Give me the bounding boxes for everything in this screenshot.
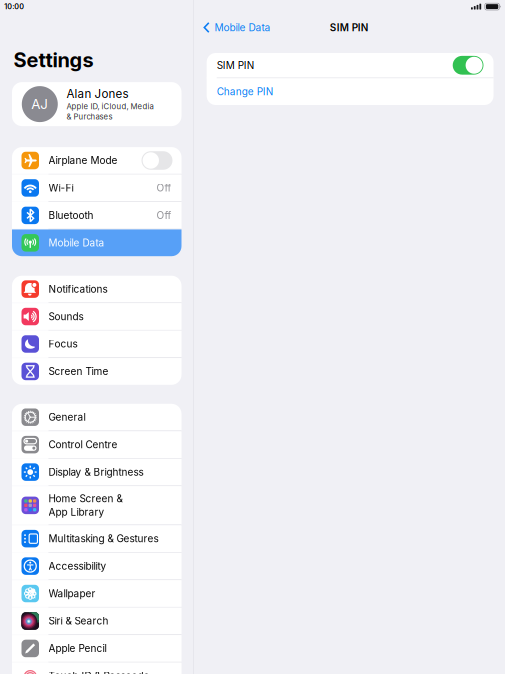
staticText: SIM PIN — [217, 59, 255, 71]
staticText: Siri & Search — [48, 615, 108, 627]
staticText: Alan Jones — [66, 87, 128, 101]
button[interactable]: Apple Pencil — [12, 635, 181, 662]
staticText: Off — [156, 182, 171, 194]
staticText: 10:00 — [4, 2, 24, 11]
button[interactable]: AJ — [12, 82, 181, 126]
button[interactable]: Accessibility — [12, 553, 181, 579]
staticText: Wallpaper — [48, 587, 95, 600]
button[interactable]: Siri & Search — [12, 608, 181, 634]
button[interactable]: Airplane Mode — [12, 147, 181, 174]
staticText: Wi-Fi — [48, 182, 73, 194]
staticText: Off — [156, 209, 171, 221]
button[interactable]: Bluetooth — [12, 202, 181, 229]
staticText: Airplane Mode — [48, 154, 117, 166]
staticText: Focus — [48, 338, 77, 350]
button[interactable]: Wallpaper — [12, 580, 181, 607]
staticText: Settings — [13, 48, 93, 72]
button[interactable]: Focus — [12, 331, 181, 357]
staticText: Screen Time — [48, 365, 108, 377]
button[interactable]: Change PIN — [207, 78, 493, 105]
button[interactable]: Touch ID & Passcode — [12, 662, 181, 674]
button[interactable]: Control Centre — [12, 431, 181, 458]
button[interactable]: Screen Time — [12, 358, 181, 385]
staticText: Mobile Data — [48, 237, 104, 249]
staticText: Mobile Data — [214, 21, 270, 34]
button[interactable]: Display & Brightness — [12, 459, 181, 485]
button[interactable]: Sounds — [12, 303, 181, 330]
staticText: AJ — [31, 96, 48, 112]
staticText: Control Centre — [48, 439, 117, 451]
staticText: Touch ID & Passcode — [48, 670, 149, 674]
button[interactable]: Multitasking & Gestures — [12, 525, 181, 552]
staticText: Display & Brightness — [48, 466, 143, 478]
staticText: Accessibility — [48, 560, 106, 572]
button[interactable]: General — [12, 404, 181, 431]
button[interactable]: Home Screen & — [12, 486, 181, 525]
button[interactable]: Mobile Data — [12, 229, 181, 256]
button[interactable]: Notifications — [12, 276, 181, 302]
staticText: Notifications — [48, 283, 107, 295]
button[interactable]: Mobile Data — [194, 18, 270, 37]
staticText: App Library — [48, 506, 104, 518]
staticText: & Purchases — [66, 112, 112, 121]
button[interactable]: Wi-Fi — [12, 175, 181, 201]
staticText: Bluetooth — [48, 209, 93, 221]
staticText: SIM PIN — [330, 21, 369, 34]
staticText: Apple Pencil — [48, 642, 106, 654]
staticText: Apple ID, iCloud, Media — [66, 102, 153, 111]
staticText: Home Screen & — [48, 492, 122, 505]
staticText: Sounds — [48, 310, 83, 323]
staticText: General — [48, 411, 85, 423]
staticText: Change PIN — [217, 86, 274, 98]
staticText: Multitasking & Gestures — [48, 533, 158, 545]
